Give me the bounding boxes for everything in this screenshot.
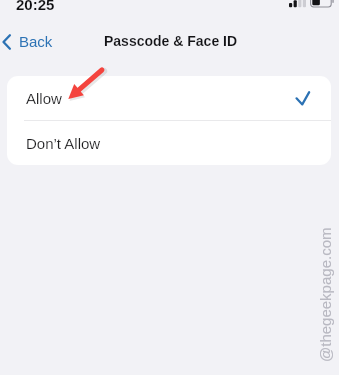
staticText: Back bbox=[19, 33, 53, 50]
button[interactable]: Back bbox=[0, 32, 59, 51]
other: Cellular signal and battery bbox=[0, 0, 339, 26]
other: Pointer arrow bbox=[0, 0, 339, 375]
staticText: Passcode & Face ID bbox=[104, 33, 238, 49]
staticText: @thegeekpage.com bbox=[317, 227, 334, 362]
other: Back bbox=[2, 34, 11, 50]
button[interactable]: Don’t Allow bbox=[7, 121, 331, 165]
button[interactable]: Allow bbox=[7, 76, 331, 120]
staticText: Allow bbox=[26, 90, 62, 107]
staticText: Don’t Allow bbox=[26, 135, 101, 152]
other: Selected bbox=[295, 92, 313, 110]
staticText: 20:25 bbox=[16, 0, 55, 13]
